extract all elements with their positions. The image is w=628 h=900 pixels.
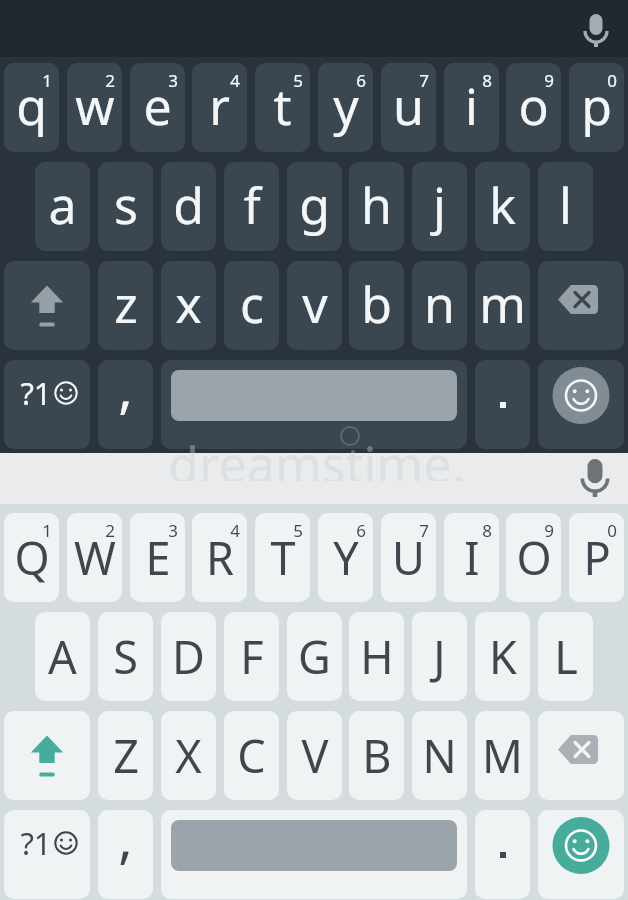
button[interactable]: i — [444, 63, 499, 152]
button[interactable]: L — [538, 612, 593, 701]
button[interactable]: r — [192, 63, 247, 152]
staticText: e — [143, 72, 172, 140]
button[interactable]: I — [444, 513, 499, 602]
button[interactable]: p — [569, 63, 624, 152]
button[interactable] — [161, 360, 467, 449]
button[interactable]: o — [506, 63, 561, 152]
button[interactable] — [161, 810, 467, 899]
staticText: u — [393, 72, 424, 140]
button[interactable]: F — [224, 612, 279, 701]
button[interactable]: H — [349, 612, 404, 701]
staticText: A — [48, 626, 77, 687]
staticText: q — [16, 72, 47, 140]
button[interactable]: y — [318, 63, 373, 152]
button[interactable]: W — [67, 513, 122, 602]
button[interactable]: ?1 — [4, 810, 90, 899]
button[interactable] — [4, 261, 90, 350]
button[interactable]: l — [538, 162, 593, 251]
button[interactable]: P — [569, 513, 624, 602]
button[interactable]: a — [35, 162, 90, 251]
staticText: I — [464, 527, 480, 588]
button[interactable]: Y — [318, 513, 373, 602]
button[interactable]: R — [192, 513, 247, 602]
staticText: i — [465, 72, 478, 140]
button[interactable]: N — [412, 711, 467, 800]
button[interactable]: e — [130, 63, 185, 152]
button[interactable]: Z — [98, 711, 153, 800]
button[interactable]: v — [287, 261, 342, 350]
button[interactable]: m — [475, 261, 530, 350]
button[interactable]: q — [4, 63, 59, 152]
button[interactable]: G — [287, 612, 342, 701]
button[interactable]: C — [224, 711, 279, 800]
button[interactable]: S — [98, 612, 153, 701]
button[interactable] — [538, 261, 624, 350]
button[interactable]: f — [224, 162, 279, 251]
staticText: P — [583, 527, 611, 588]
staticText: b — [361, 270, 392, 338]
button[interactable]: k — [475, 162, 530, 251]
staticText: 1 — [42, 69, 52, 92]
staticText: 7 — [419, 69, 429, 92]
button[interactable]: s — [98, 162, 153, 251]
staticText: B — [362, 725, 392, 786]
button[interactable]: D — [161, 612, 216, 701]
staticText: U — [392, 527, 425, 588]
staticText: E — [145, 527, 171, 588]
staticText: K — [489, 626, 517, 687]
staticText: a — [48, 171, 77, 239]
button[interactable]: g — [287, 162, 342, 251]
button[interactable]: B — [349, 711, 404, 800]
staticText: 6 — [356, 69, 366, 92]
button[interactable]: , — [98, 360, 153, 449]
staticText: D — [172, 626, 205, 687]
staticText: C — [237, 725, 266, 786]
button[interactable]: u — [381, 63, 436, 152]
staticText: X — [175, 725, 202, 786]
button[interactable]: O — [506, 513, 561, 602]
button[interactable]: U — [381, 513, 436, 602]
button[interactable]: , — [98, 810, 153, 899]
button[interactable]: n — [412, 261, 467, 350]
button[interactable]: E — [130, 513, 185, 602]
button[interactable]: z — [98, 261, 153, 350]
button[interactable]: Q — [4, 513, 59, 602]
staticText: m — [479, 270, 526, 338]
staticText: Z — [113, 725, 139, 786]
staticText: 4 — [230, 519, 240, 542]
staticText: R — [206, 527, 234, 588]
staticText: 3 — [168, 69, 178, 92]
button[interactable]: M — [475, 711, 530, 800]
staticText: 7 — [419, 519, 429, 542]
button[interactable] — [538, 360, 624, 449]
staticText: 9 — [544, 69, 554, 92]
button[interactable]: j — [412, 162, 467, 251]
staticText: Y — [333, 527, 359, 588]
button[interactable] — [538, 711, 624, 800]
button[interactable]: h — [349, 162, 404, 251]
button[interactable]: b — [349, 261, 404, 350]
staticText: , — [118, 810, 133, 874]
button[interactable] — [475, 360, 530, 449]
button[interactable] — [538, 810, 624, 899]
button[interactable]: t — [255, 63, 310, 152]
staticText: n — [424, 270, 455, 338]
staticText: ?1 — [20, 372, 52, 414]
staticText: T — [270, 527, 296, 588]
button[interactable]: x — [161, 261, 216, 350]
button[interactable]: d — [161, 162, 216, 251]
staticText: 0 — [607, 519, 617, 542]
button[interactable]: T — [255, 513, 310, 602]
button[interactable]: K — [475, 612, 530, 701]
staticText: W — [74, 527, 116, 588]
button[interactable]: V — [287, 711, 342, 800]
staticText: J — [433, 626, 446, 687]
button[interactable]: c — [224, 261, 279, 350]
button[interactable]: ?1 — [4, 360, 90, 449]
button[interactable]: w — [67, 63, 122, 152]
button[interactable]: X — [161, 711, 216, 800]
button[interactable] — [4, 711, 90, 800]
button[interactable]: J — [412, 612, 467, 701]
button[interactable]: A — [35, 612, 90, 701]
button[interactable] — [475, 810, 530, 899]
